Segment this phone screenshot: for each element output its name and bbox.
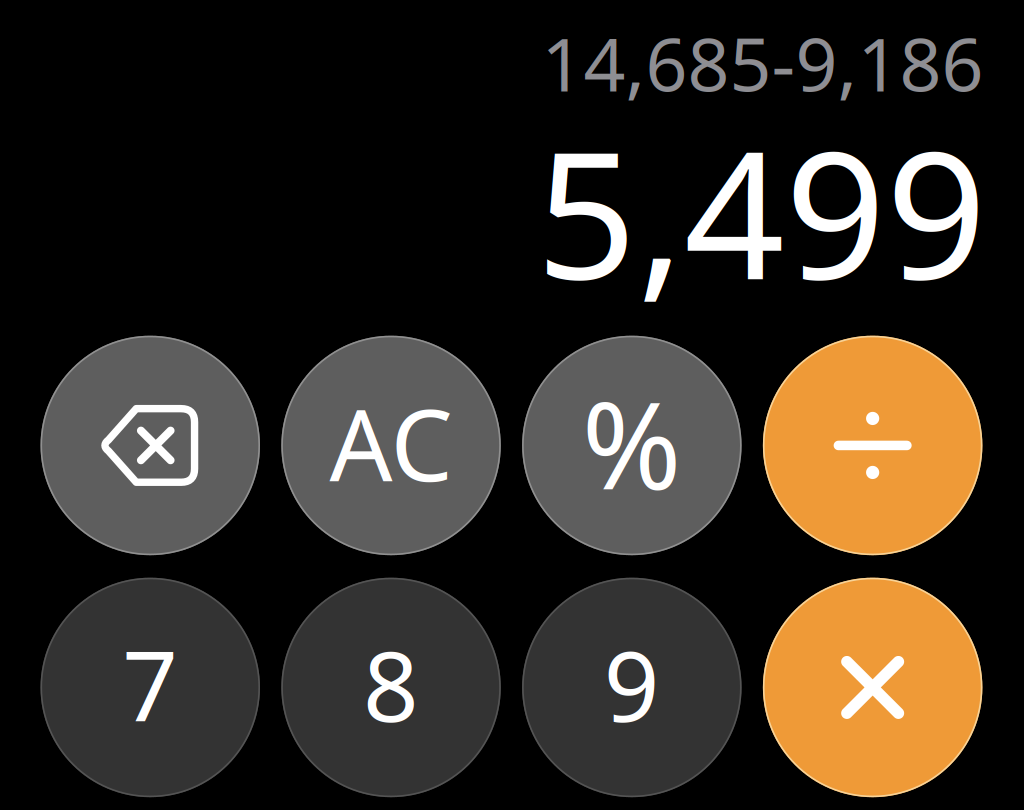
button[interactable]: 8 [281,578,501,797]
staticText: % [582,363,682,523]
staticText: 8 [363,619,419,749]
button[interactable]: 9 [522,578,742,797]
button[interactable]: Delete [40,336,260,555]
staticText: AC [330,377,453,508]
button[interactable]: Divide [763,336,982,555]
staticText: 9 [604,619,660,749]
button[interactable]: AC [281,336,501,555]
staticText: 7 [122,619,178,749]
button[interactable]: % [522,336,742,555]
button[interactable]: 7 [40,578,260,797]
staticText: 5,499 [536,94,987,327]
staticText: 14,685-9,186 [541,14,983,112]
button[interactable]: Multiply [763,578,982,797]
